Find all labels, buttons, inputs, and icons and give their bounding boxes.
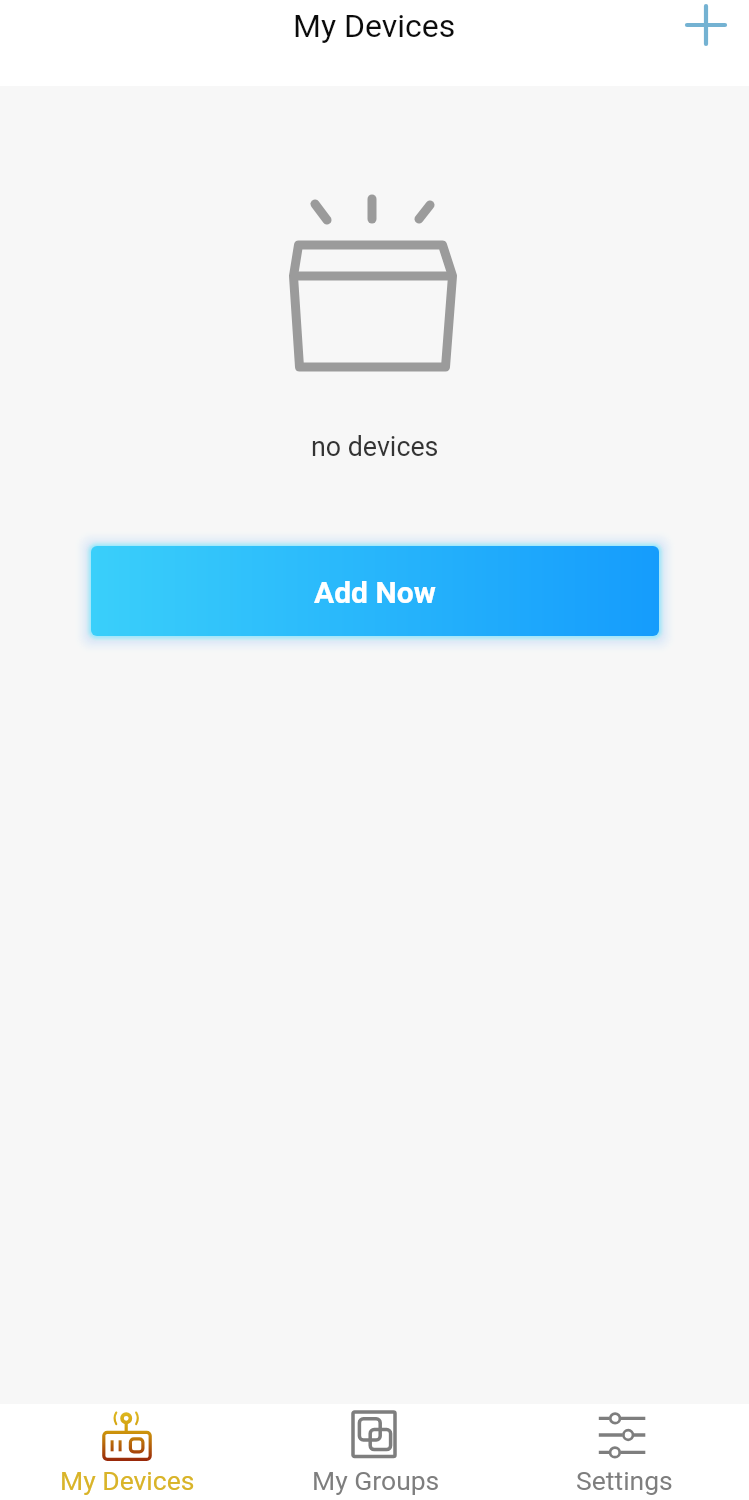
- staticText: Settings: [576, 1465, 673, 1496]
- button[interactable]: Settings: [500, 1404, 748, 1500]
- staticText: Add Now: [314, 575, 436, 610]
- button[interactable]: Add Now: [91, 546, 659, 636]
- button[interactable]: My Groups: [252, 1404, 500, 1500]
- staticText: no devices: [311, 431, 439, 462]
- staticText: My Devices: [293, 7, 456, 45]
- staticText: My Devices: [60, 1465, 195, 1496]
- button[interactable]: My Devices: [3, 1404, 252, 1500]
- button[interactable]: Add device: [670, 0, 742, 61]
- staticText: My Groups: [312, 1465, 440, 1496]
